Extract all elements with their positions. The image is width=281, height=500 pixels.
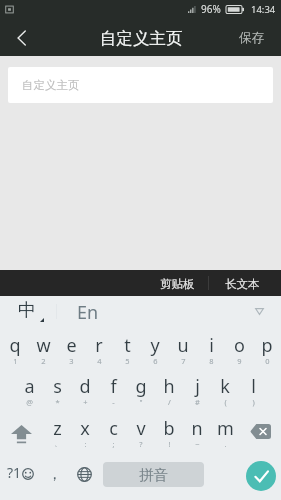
button[interactable]: Hide keyboard: [243, 296, 281, 327]
staticText: l: [251, 374, 256, 399]
button[interactable]: k: [211, 369, 239, 411]
button[interactable]: y: [141, 327, 169, 369]
staticText: ，: [47, 465, 62, 484]
button[interactable]: t: [113, 327, 141, 369]
button[interactable]: r: [85, 327, 113, 369]
button[interactable]: d: [71, 369, 99, 411]
staticText: b: [163, 416, 175, 441]
staticText: 中: [18, 299, 36, 322]
staticText: f: [110, 374, 117, 399]
button[interactable]: c: [99, 411, 127, 453]
staticText: !: [168, 439, 171, 449]
staticText: 自定义主页: [100, 28, 183, 49]
button[interactable]: 剪贴板: [147, 270, 208, 296]
button[interactable]: 自定义主页: [8, 67, 273, 103]
button[interactable]: g: [127, 369, 155, 411]
staticText: t: [124, 333, 131, 358]
button[interactable]: a: [15, 369, 43, 411]
button[interactable]: Enter: [204, 453, 281, 500]
button[interactable]: En: [57, 296, 117, 327]
staticText: ~: [195, 439, 200, 449]
staticText: 7: [181, 356, 186, 366]
staticText: *: [55, 397, 60, 407]
staticText: 剪贴板: [160, 277, 195, 291]
staticText: :: [84, 439, 87, 449]
staticText: 保存: [239, 30, 264, 46]
staticText: @: [26, 397, 33, 407]
staticText: ;: [112, 439, 115, 449]
staticText: y: [150, 333, 160, 358]
staticText: h: [163, 374, 175, 399]
staticText: 4: [97, 356, 102, 366]
button[interactable]: Shift: [0, 411, 43, 453]
button[interactable]: h: [155, 369, 183, 411]
button[interactable]: Back: [0, 18, 40, 56]
staticText: r: [95, 333, 103, 358]
staticText: z: [53, 416, 62, 441]
staticText: o: [234, 333, 245, 358]
staticText: /: [168, 397, 171, 407]
button[interactable]: s: [43, 369, 71, 411]
staticText: g: [135, 374, 147, 399]
staticText: ": [139, 397, 143, 407]
staticText: 、: [54, 439, 62, 448]
button[interactable]: o: [225, 327, 253, 369]
button[interactable]: n: [183, 411, 211, 453]
staticText: #: [195, 397, 200, 407]
staticText: v: [136, 416, 146, 441]
staticText: a: [24, 374, 35, 399]
button[interactable]: f: [99, 369, 127, 411]
staticText: 3: [69, 356, 74, 366]
button[interactable]: w: [29, 327, 57, 369]
button[interactable]: x: [71, 411, 99, 453]
button[interactable]: i: [197, 327, 225, 369]
staticText: .: [224, 439, 227, 449]
button[interactable]: e: [57, 327, 85, 369]
staticText: ): [252, 397, 255, 407]
button[interactable]: 拼音: [103, 462, 204, 487]
staticText: w: [36, 333, 51, 358]
staticText: 自定义主页: [22, 78, 80, 92]
button[interactable]: v: [127, 411, 155, 453]
staticText: c: [109, 416, 118, 441]
button[interactable]: z: [43, 411, 71, 453]
button[interactable]: q: [0, 327, 29, 369]
staticText: 0: [265, 356, 270, 366]
staticText: p: [261, 333, 273, 358]
button[interactable]: b: [155, 411, 183, 453]
staticText: i: [209, 333, 214, 358]
button[interactable]: Change language: [69, 453, 99, 500]
staticText: 96%: [201, 2, 221, 16]
button[interactable]: Backspace: [239, 411, 281, 453]
button[interactable]: 长文本: [209, 270, 275, 296]
button[interactable]: m: [211, 411, 239, 453]
staticText: 5: [125, 356, 130, 366]
staticText: En: [77, 300, 99, 325]
button[interactable]: p: [253, 327, 281, 369]
staticText: u: [177, 333, 189, 358]
button[interactable]: Symbols and emoji: [0, 453, 40, 500]
button[interactable]: 保存: [225, 18, 281, 56]
button[interactable]: 中: [0, 296, 56, 327]
staticText: k: [220, 374, 230, 399]
staticText: 6: [153, 356, 158, 366]
button[interactable]: l: [239, 369, 267, 411]
staticText: n: [191, 416, 203, 441]
staticText: q: [9, 333, 21, 358]
staticText: d: [79, 374, 91, 399]
staticText: ?1: [7, 463, 22, 482]
staticText: 拼音: [139, 466, 168, 484]
staticText: j: [195, 374, 200, 399]
staticText: m: [217, 416, 234, 441]
staticText: -: [112, 397, 115, 407]
staticText: x: [80, 416, 90, 441]
staticText: 8: [209, 356, 214, 366]
button[interactable]: ，: [40, 453, 69, 500]
button[interactable]: j: [183, 369, 211, 411]
staticText: +: [83, 397, 88, 407]
staticText: 14:34: [251, 3, 276, 16]
staticText: 长文本: [225, 277, 260, 291]
staticText: ?: [139, 439, 143, 449]
button[interactable]: u: [169, 327, 197, 369]
staticText: e: [66, 333, 77, 358]
